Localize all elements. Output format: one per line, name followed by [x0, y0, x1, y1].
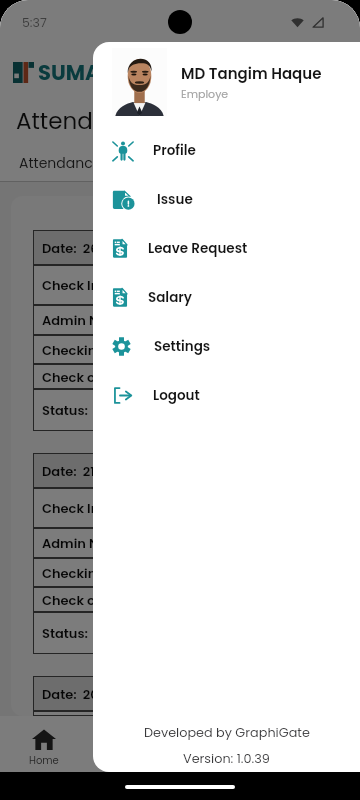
- button[interactable]: Logout: [93, 371, 360, 420]
- staticText: Settings: [154, 337, 211, 356]
- button[interactable]: Date: 26 Jan 2025: [33, 230, 327, 431]
- staticText: Check out Time: 18:02: [42, 368, 187, 386]
- button[interactable]: Salary: [93, 273, 360, 322]
- staticText: Attendance: [19, 153, 102, 173]
- staticText: Admin Note: -: [42, 534, 138, 552]
- staticText: SUMASOFT: [38, 58, 154, 87]
- staticText: Issue: [157, 190, 193, 209]
- staticText: Salary: [148, 288, 192, 307]
- staticText: Employe: [181, 86, 229, 101]
- staticText: Date: 21 Jan 2025: [42, 462, 158, 480]
- staticText: Profile: [153, 141, 196, 160]
- staticText: Version: 1.0.39: [183, 750, 270, 768]
- staticText: Checkin Time: 09:01: [42, 341, 175, 359]
- staticText: Status: Late: [42, 401, 122, 419]
- button[interactable]: Profile: [93, 126, 360, 175]
- staticText: Summary: [146, 153, 215, 173]
- staticText: Attendance: [16, 105, 152, 137]
- staticText: Status: Late: [42, 624, 122, 642]
- staticText: Check In Status: Present: [42, 276, 205, 294]
- staticText: Date: 20 Jan 2025: [42, 685, 162, 703]
- button[interactable]: Date: 21 Jan 2025: [33, 453, 327, 654]
- staticText: Home: [29, 753, 59, 767]
- button[interactable]: Summary: [120, 145, 240, 181]
- staticText: Check In Status: Present: [42, 711, 205, 716]
- staticText: Leave Request: [148, 239, 248, 258]
- staticText: Check out Time: 18:02: [42, 591, 187, 609]
- button[interactable]: Attendance: [0, 145, 120, 181]
- staticText: Check In Status: Present: [42, 499, 205, 517]
- staticText: Admin Note: -: [42, 311, 138, 329]
- button[interactable]: Date: 20 Jan 2025: [33, 676, 327, 716]
- button[interactable]: Settings: [93, 322, 360, 371]
- button[interactable]: Leave Request: [93, 224, 360, 273]
- staticText: Date: 26 Jan 2025: [42, 239, 162, 257]
- staticText: Developed by GraphiGate: [144, 724, 310, 742]
- staticText: 5:37: [22, 14, 47, 31]
- staticText: MD Tangim Haque: [181, 63, 322, 84]
- button[interactable]: Issue: [93, 175, 360, 224]
- staticText: Checkin Time: 09:01: [42, 564, 175, 582]
- button[interactable]: Home: [12, 729, 76, 767]
- staticText: Logout: [153, 386, 200, 405]
